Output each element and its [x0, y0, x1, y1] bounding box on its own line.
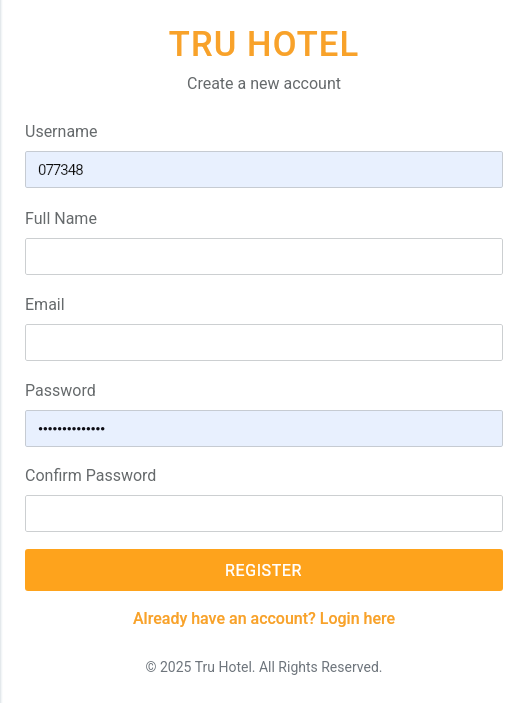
staticText: 077348 [38, 161, 83, 179]
staticText: Email [25, 295, 65, 314]
staticText: Create a new account [25, 74, 503, 93]
button[interactable]: Email [25, 324, 503, 361]
button[interactable]: Full Name [25, 238, 503, 275]
staticText: Username [25, 122, 98, 141]
staticText: Full Name [25, 209, 97, 228]
button[interactable]: Password [25, 410, 503, 447]
staticText: Password [25, 381, 96, 400]
staticText: © 2025 Tru Hotel. All Rights Reserved. [25, 659, 503, 675]
button[interactable]: Confirm Password [25, 495, 503, 532]
staticText: Confirm Password [25, 466, 157, 485]
staticText: Already have an account? Login here [133, 609, 396, 628]
button[interactable]: REGISTER [25, 549, 503, 591]
button[interactable]: Already have an account? Login here [25, 605, 503, 632]
staticText: REGISTER [225, 561, 303, 580]
staticText: TRU HOTEL [25, 24, 503, 64]
button[interactable]: Username [25, 151, 503, 188]
